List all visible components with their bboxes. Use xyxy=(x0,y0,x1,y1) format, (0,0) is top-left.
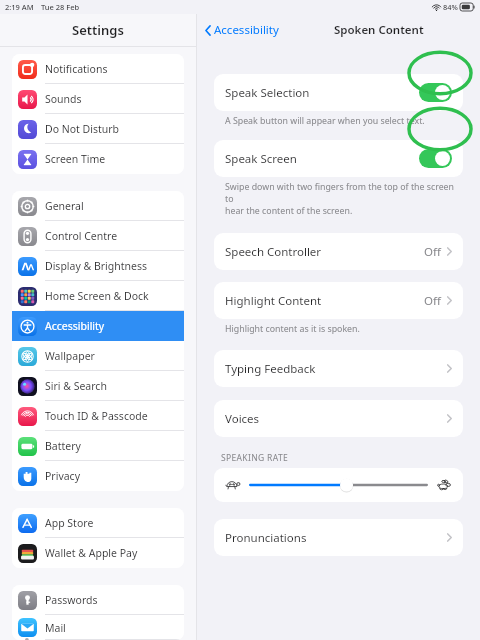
button[interactable]: Voices xyxy=(214,400,463,437)
button[interactable]: Typing Feedback xyxy=(214,350,463,387)
staticText: Speak Selection xyxy=(225,85,310,101)
button[interactable]: Wallpaper xyxy=(12,341,184,371)
staticText: SPEAKING RATE xyxy=(221,452,289,464)
button[interactable]: Battery xyxy=(12,431,184,461)
staticText: 2:19 AM xyxy=(5,2,34,12)
staticText: Accessibility xyxy=(45,319,105,333)
staticText: Siri & Search xyxy=(45,379,107,393)
button[interactable]: Accessibility xyxy=(12,311,184,341)
staticText: Battery xyxy=(45,439,81,453)
staticText: Tue 28 Feb xyxy=(41,2,80,12)
staticText: Speak Screen xyxy=(225,151,297,167)
button[interactable]: Speak Selection xyxy=(214,74,463,111)
staticText: Wallpaper xyxy=(45,349,95,363)
staticText: Mail xyxy=(45,621,66,635)
staticText: Spoken Content xyxy=(334,22,424,38)
staticText: Voices xyxy=(225,411,260,427)
staticText: Do Not Disturb xyxy=(45,122,120,136)
staticText: Swipe down with two fingers from the top… xyxy=(225,181,456,217)
staticText: Touch ID & Passcode xyxy=(45,409,148,423)
staticText: 84% xyxy=(443,2,458,12)
button[interactable]: Sounds xyxy=(12,84,184,114)
staticText: Highlight content as it is spoken. xyxy=(225,323,456,335)
button[interactable]: Display & Brightness xyxy=(12,251,184,281)
staticText: Sounds xyxy=(45,92,82,106)
button[interactable]: Notifications xyxy=(12,54,184,84)
button[interactable]: Speech Controller xyxy=(214,233,463,270)
button[interactable]: Wallet & Apple Pay xyxy=(12,538,184,568)
button[interactable]: Control Centre xyxy=(12,221,184,251)
button[interactable]: General xyxy=(12,191,184,221)
button[interactable]: Speak Screen xyxy=(214,140,463,177)
staticText: A Speak button will appear when you sele… xyxy=(225,115,456,127)
staticText: Passwords xyxy=(45,593,98,607)
button[interactable]: Accessibility xyxy=(205,22,279,38)
staticText: Privacy xyxy=(45,469,81,483)
staticText: Speech Controller xyxy=(225,244,322,260)
staticText: Pronunciations xyxy=(225,530,307,546)
button[interactable]: Home Screen & Dock xyxy=(12,281,184,311)
button[interactable]: Mail xyxy=(12,615,184,640)
staticText: General xyxy=(45,199,84,213)
button[interactable]: Highlight Content xyxy=(214,282,463,319)
staticText: App Store xyxy=(45,516,94,530)
button[interactable]: Toggle xyxy=(419,149,452,168)
staticText: Highlight Content xyxy=(225,293,322,309)
staticText: Control Centre xyxy=(45,229,118,243)
button[interactable]: App Store xyxy=(12,508,184,538)
button[interactable]: Passwords xyxy=(12,585,184,615)
staticText: Wallet & Apple Pay xyxy=(45,546,138,560)
button[interactable]: Touch ID & Passcode xyxy=(12,401,184,431)
button[interactable]: Privacy xyxy=(12,461,184,491)
staticText: Notifications xyxy=(45,62,108,76)
staticText: Settings xyxy=(72,21,124,39)
staticText: Display & Brightness xyxy=(45,259,148,273)
staticText: Typing Feedback xyxy=(225,361,316,377)
staticText: Off xyxy=(424,244,441,260)
button[interactable]: Toggle xyxy=(419,83,452,102)
staticText: Screen Time xyxy=(45,152,106,166)
staticText: Accessibility xyxy=(214,22,279,38)
button[interactable]: Do Not Disturb xyxy=(12,114,184,144)
staticText: Home Screen & Dock xyxy=(45,289,149,303)
button[interactable]: Screen Time xyxy=(12,144,184,174)
button[interactable]: Siri & Search xyxy=(12,371,184,401)
button[interactable]: Pronunciations xyxy=(214,519,463,556)
staticText: Off xyxy=(424,293,441,309)
